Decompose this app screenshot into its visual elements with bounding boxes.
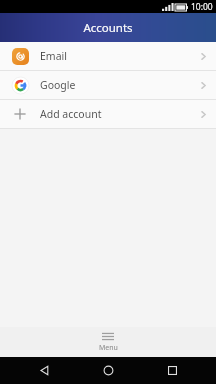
button[interactable]: Recent apps: [152, 357, 192, 384]
button[interactable]: Home: [88, 357, 128, 384]
other: Add account icon: [11, 105, 29, 123]
staticText: Accounts: [83, 20, 133, 36]
button[interactable]: Email account icon: [0, 42, 216, 70]
staticText: Menu: [99, 343, 118, 353]
staticText: Google: [40, 78, 199, 92]
other: Google account icon: [11, 76, 29, 94]
staticText: 10:00: [191, 1, 213, 13]
button[interactable]: Google account icon: [0, 71, 216, 99]
staticText: Email: [40, 49, 199, 63]
other: Email account icon: [11, 47, 29, 65]
other: Menu: [102, 332, 114, 341]
staticText: Add account: [40, 107, 199, 121]
button[interactable]: Menu: [0, 327, 216, 357]
button[interactable]: Back: [24, 357, 64, 384]
button[interactable]: Add account icon: [0, 100, 216, 128]
